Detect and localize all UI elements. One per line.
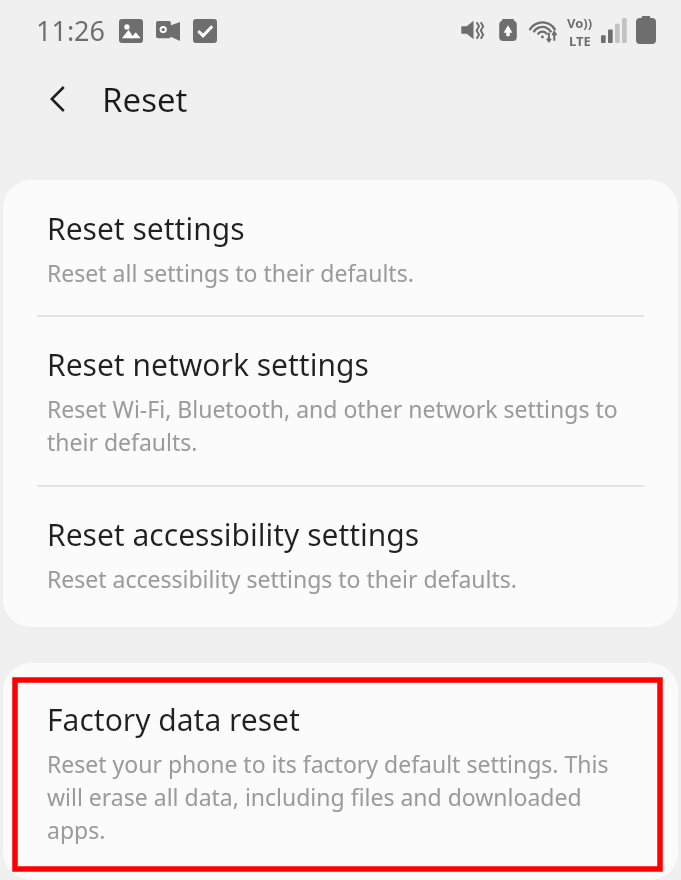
button[interactable]: Reset settings [3,180,678,315]
staticText: Reset all settings to their defaults. [47,257,414,288]
staticText: Factory data reset [47,699,300,740]
staticText: Reset accessibility settings to their de… [47,563,517,594]
staticText: LTE [569,32,591,46]
staticText: 11:26 [36,12,106,49]
button[interactable]: Reset accessibility settings [3,487,678,627]
button[interactable]: Factory data reset [3,663,678,880]
staticText: Vo)) [567,14,593,32]
staticText: Reset network settings [47,344,369,385]
staticText: Reset Wi-Fi, Bluetooth, and other networ… [47,393,638,458]
button[interactable]: Back [30,70,88,128]
button[interactable]: Reset network settings [3,317,678,485]
staticText: Reset accessibility settings [47,514,420,555]
staticText: Reset [102,77,188,122]
staticText: Reset your phone to its factory default … [47,748,636,844]
staticText: Reset settings [47,208,245,249]
